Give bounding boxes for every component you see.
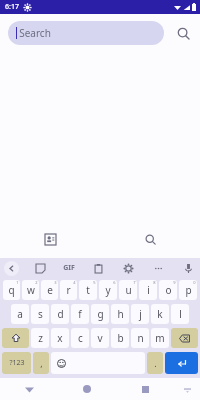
- staticText: GIF: [63, 263, 75, 273]
- staticText: u: [125, 283, 132, 297]
- staticText: l: [179, 307, 182, 321]
- staticText: 8: [153, 280, 156, 285]
- staticText: 3: [54, 280, 57, 285]
- button[interactable]: y: [99, 280, 117, 300]
- button[interactable]: n: [131, 328, 149, 348]
- button[interactable]: i: [139, 280, 157, 300]
- button[interactable]: h: [111, 304, 129, 324]
- staticText: z: [38, 331, 43, 345]
- button[interactable]: Hide keyboard: [180, 382, 194, 396]
- button[interactable]: Back: [4, 261, 19, 276]
- staticText: o: [165, 283, 172, 297]
- button[interactable]: Contacts: [40, 229, 60, 249]
- staticText: t: [86, 283, 90, 297]
- staticText: e: [47, 283, 53, 297]
- staticText: r: [66, 283, 71, 297]
- staticText: a: [17, 307, 23, 321]
- button[interactable]: m: [151, 328, 169, 348]
- staticText: i: [147, 283, 150, 297]
- staticText: x: [57, 331, 63, 345]
- button[interactable]: a: [11, 304, 29, 324]
- button[interactable]: Recents: [136, 380, 154, 398]
- staticText: n: [137, 331, 144, 345]
- button[interactable]: u: [119, 280, 137, 300]
- staticText: 2: [35, 280, 38, 285]
- button[interactable]: s: [31, 304, 49, 324]
- button[interactable]: Space: [51, 352, 145, 374]
- button[interactable]: l: [171, 304, 189, 324]
- button[interactable]: Settings: [120, 260, 136, 276]
- staticText: h: [117, 307, 124, 321]
- button[interactable]: b: [111, 328, 129, 348]
- staticText: c: [78, 331, 83, 345]
- staticText: k: [157, 307, 163, 321]
- button[interactable]: q: [3, 280, 20, 300]
- staticText: 7: [133, 280, 136, 285]
- button[interactable]: Home: [78, 380, 96, 398]
- staticText: p: [185, 283, 192, 297]
- staticText: v: [97, 331, 103, 345]
- staticText: f: [78, 307, 82, 321]
- button[interactable]: Enter: [165, 352, 198, 374]
- button[interactable]: GIF: [61, 261, 77, 275]
- button[interactable]: Stickers: [32, 260, 48, 276]
- staticText: d: [57, 307, 64, 321]
- staticText: 9: [173, 280, 176, 285]
- staticText: s: [38, 307, 43, 321]
- staticText: 5: [93, 280, 96, 285]
- button[interactable]: k: [151, 304, 169, 324]
- button[interactable]: Back: [20, 380, 38, 398]
- staticText: 6:17: [5, 2, 19, 12]
- button[interactable]: Backspace: [171, 328, 198, 348]
- staticText: ,: [40, 357, 43, 369]
- button[interactable]: e: [41, 280, 58, 300]
- button[interactable]: .: [147, 352, 163, 374]
- staticText: g: [97, 307, 104, 321]
- staticText: w: [27, 283, 35, 297]
- button[interactable]: Search suggestions: [140, 229, 160, 249]
- button[interactable]: Clipboard: [90, 260, 106, 276]
- staticText: ?123: [9, 358, 25, 368]
- staticText: 6: [113, 280, 116, 285]
- button[interactable]: x: [51, 328, 69, 348]
- staticText: Search: [19, 26, 51, 40]
- button[interactable]: ,: [33, 352, 49, 374]
- staticText: 0: [193, 280, 196, 285]
- button[interactable]: w: [22, 280, 39, 300]
- button[interactable]: t: [79, 280, 97, 300]
- staticText: 1: [16, 280, 19, 285]
- staticText: j: [139, 307, 142, 321]
- button[interactable]: Search: [8, 21, 164, 45]
- button[interactable]: Voice input: [180, 260, 196, 276]
- button[interactable]: Search: [172, 22, 194, 44]
- button[interactable]: o: [159, 280, 177, 300]
- button[interactable]: ?123: [2, 352, 31, 374]
- button[interactable]: r: [60, 280, 77, 300]
- button[interactable]: v: [91, 328, 109, 348]
- staticText: 4: [73, 280, 76, 285]
- button[interactable]: d: [51, 304, 69, 324]
- button[interactable]: More options: [150, 260, 166, 276]
- button[interactable]: Shift: [2, 328, 29, 348]
- button[interactable]: g: [91, 304, 109, 324]
- button[interactable]: z: [31, 328, 49, 348]
- staticText: y: [105, 283, 111, 297]
- staticText: q: [8, 283, 15, 297]
- button[interactable]: j: [131, 304, 149, 324]
- staticText: .: [154, 357, 157, 369]
- staticText: b: [117, 331, 124, 345]
- button[interactable]: p: [179, 280, 197, 300]
- staticText: m: [155, 331, 165, 345]
- button[interactable]: f: [71, 304, 89, 324]
- button[interactable]: c: [71, 328, 89, 348]
